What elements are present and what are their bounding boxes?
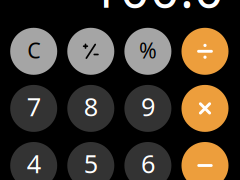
staticText: C [27, 36, 40, 64]
button[interactable]: Plus minus [67, 28, 114, 75]
button[interactable]: 4 [10, 142, 57, 180]
staticText: 7 [27, 90, 41, 123]
staticText: 6 [141, 147, 155, 180]
button[interactable]: Divide [181, 28, 228, 75]
button[interactable]: % [124, 28, 171, 75]
staticText: 9 [141, 90, 155, 123]
staticText: % [139, 36, 157, 64]
button[interactable]: Minus [181, 142, 228, 180]
button[interactable]: C [10, 28, 57, 75]
button[interactable]: Multiply [181, 85, 228, 132]
button[interactable]: 9 [124, 85, 171, 132]
staticText: 100.0 [90, 0, 224, 22]
staticText: 8 [84, 90, 98, 123]
button[interactable]: 8 [67, 85, 114, 132]
staticText: 5 [84, 147, 98, 180]
button[interactable]: 5 [67, 142, 114, 180]
staticText: 4 [27, 147, 41, 180]
button[interactable]: 6 [124, 142, 171, 180]
button[interactable]: 7 [10, 85, 57, 132]
